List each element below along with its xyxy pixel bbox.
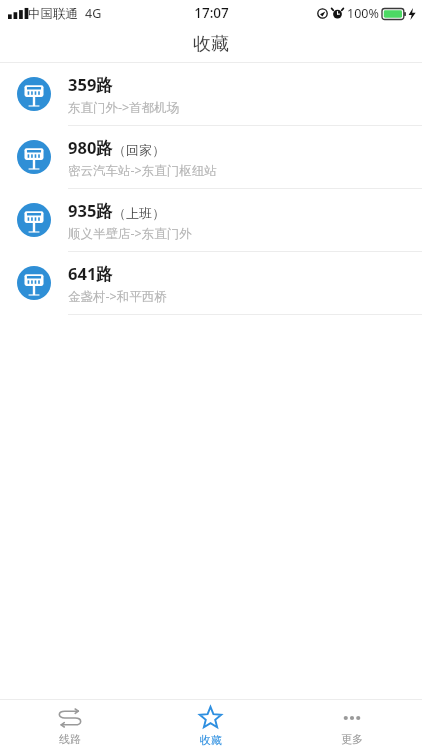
staticText: 线路 (59, 732, 81, 746)
staticText: 收藏 (200, 733, 222, 747)
button[interactable]: 359路 (0, 63, 422, 126)
staticText: 100% (347, 5, 379, 22)
staticText: 中国联通 (28, 6, 78, 22)
staticText: 359路 (68, 73, 113, 96)
staticText: 641路 (68, 262, 113, 285)
staticText: 980路 (68, 136, 113, 159)
button[interactable]: 线路 (0, 700, 140, 750)
staticText: 更多 (341, 732, 363, 746)
staticText: 顺义半壁店->东直门外 (68, 225, 192, 242)
staticText: 收藏 (193, 33, 229, 56)
button[interactable]: 更多 (281, 700, 422, 750)
staticText: （回家） (113, 142, 165, 158)
staticText: 17:07 (194, 4, 229, 22)
staticText: 密云汽车站->东直门枢纽站 (68, 162, 217, 179)
staticText: 4G (85, 5, 102, 22)
button[interactable]: 935路 (0, 189, 422, 252)
staticText: 金盏村->和平西桥 (68, 288, 167, 305)
button[interactable]: 收藏 (140, 700, 281, 750)
button[interactable]: 980路 (0, 126, 422, 189)
staticText: 935路 (68, 199, 113, 222)
staticText: （上班） (113, 205, 165, 221)
button[interactable]: 641路 (0, 252, 422, 315)
staticText: 东直门外->首都机场 (68, 99, 180, 116)
